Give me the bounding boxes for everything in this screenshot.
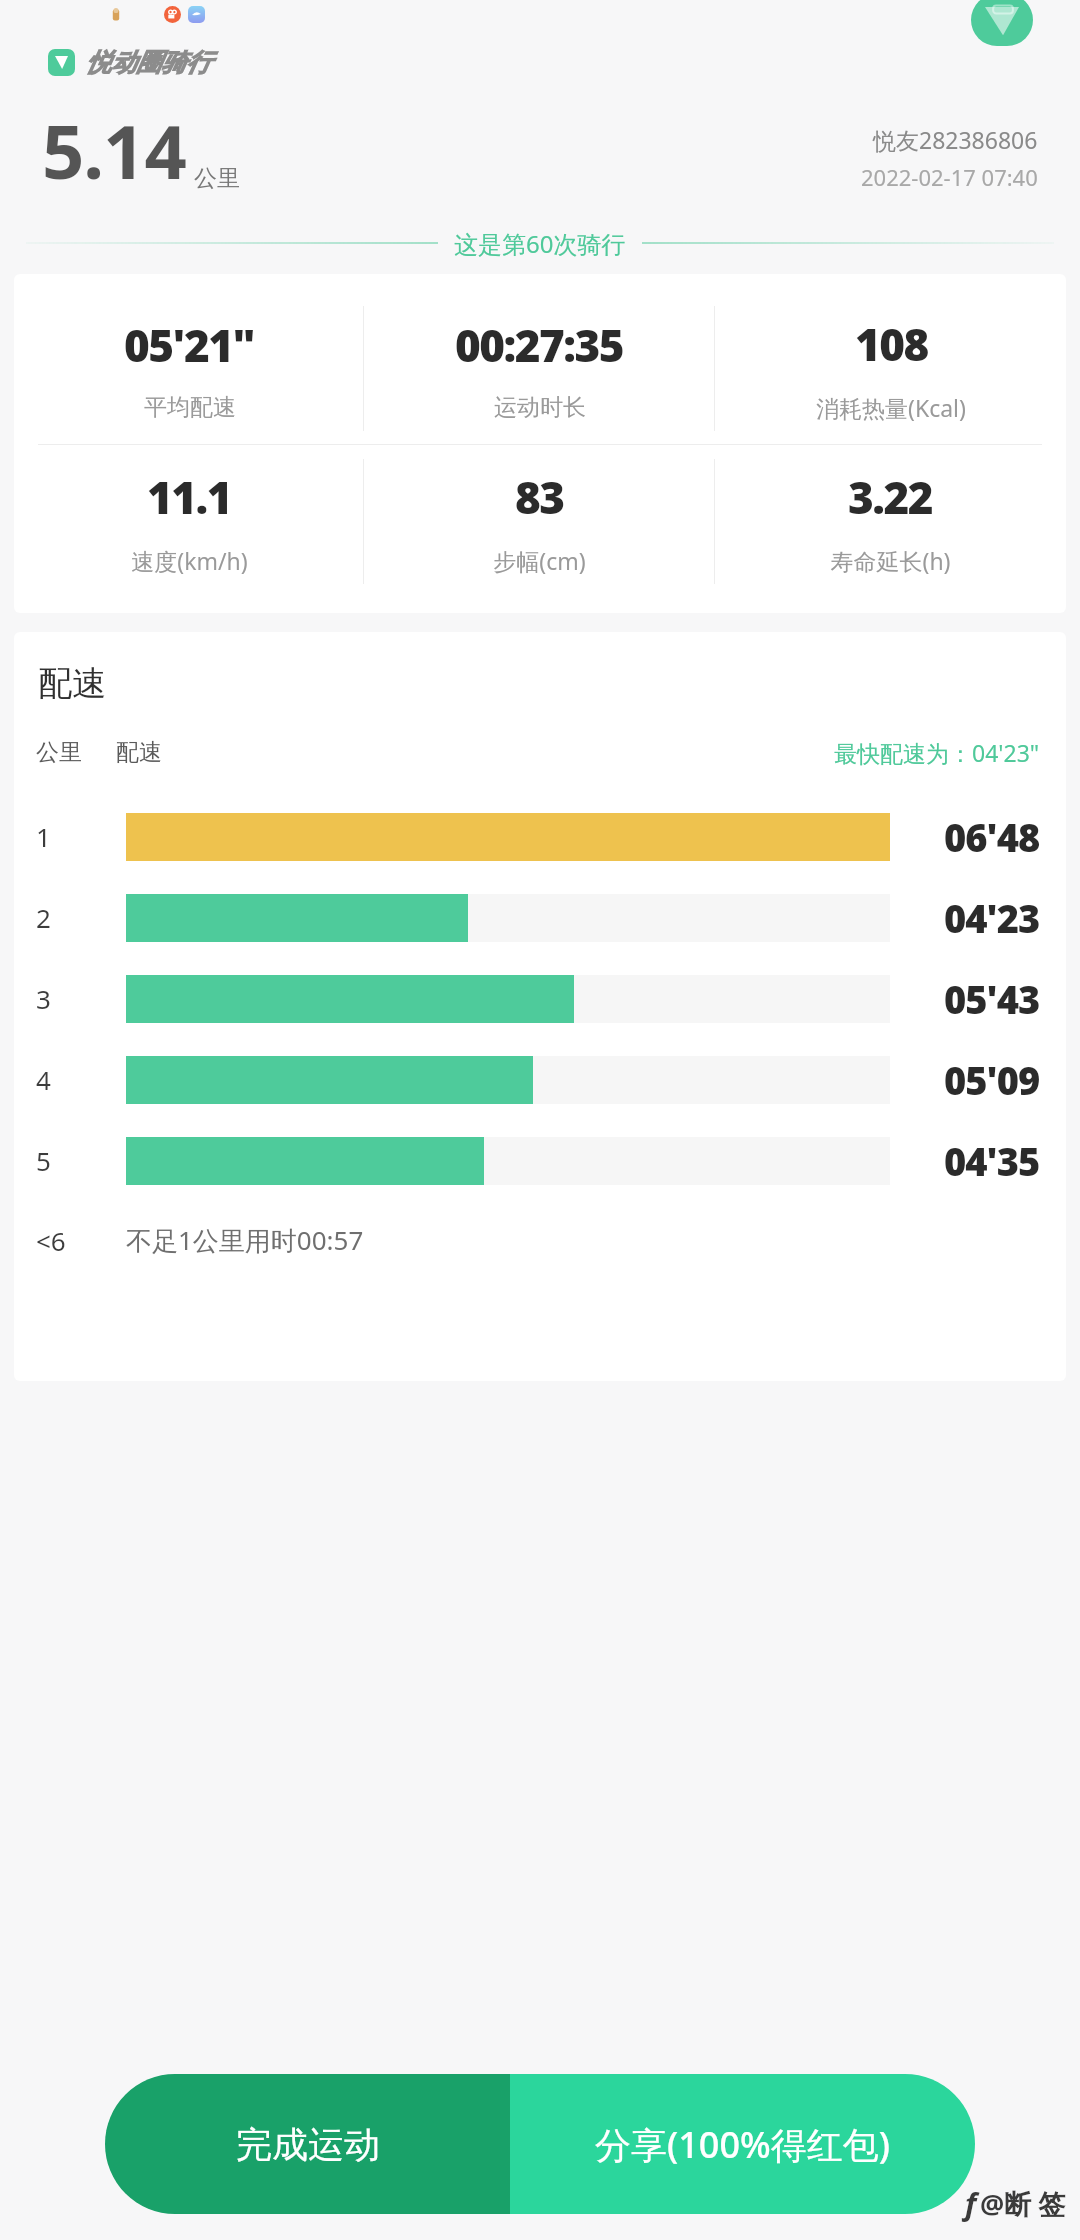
staticText: 05'43 xyxy=(944,973,1040,1025)
staticText: <6 xyxy=(36,1223,66,1258)
staticText: 5.14 xyxy=(42,100,186,200)
staticText: 1 xyxy=(36,819,51,854)
staticText: @断 签 xyxy=(980,2185,1066,2222)
staticText: 配速 xyxy=(116,738,162,767)
staticText: 00:27:35 xyxy=(455,315,624,375)
staticText: 步幅(cm) xyxy=(493,545,586,576)
staticText: 06'48 xyxy=(944,811,1040,863)
staticText: 运动时长 xyxy=(494,393,586,422)
staticText: 108 xyxy=(855,314,928,374)
staticText: 速度(km/h) xyxy=(131,545,248,576)
staticText: 2 xyxy=(36,900,51,935)
staticText: 悦动圈骑行 xyxy=(86,47,211,78)
staticText: 3 xyxy=(36,981,51,1016)
staticText: 最快配速为：04'23" xyxy=(834,737,1040,768)
staticText: 5 xyxy=(36,1143,51,1178)
staticText: 寿命延长(h) xyxy=(830,545,951,576)
staticText: 消耗热量(Kcal) xyxy=(816,392,966,423)
staticText: 04'35 xyxy=(944,1135,1040,1187)
staticText: 完成运动 xyxy=(236,2122,380,2167)
staticText: 04'23 xyxy=(944,892,1040,944)
staticText: 05'09 xyxy=(944,1054,1040,1106)
button[interactable]: Profile avatar xyxy=(971,0,1033,46)
staticText: 11.1 xyxy=(147,467,232,527)
staticText: f xyxy=(965,2183,977,2224)
staticText: 分享(100%得红包) xyxy=(595,2120,890,2169)
button[interactable]: 完成运动 xyxy=(105,2074,510,2214)
staticText: 83 xyxy=(515,467,564,527)
staticText: 平均配速 xyxy=(144,393,236,422)
staticText: 2022-02-17 07:40 xyxy=(861,162,1038,192)
staticText: 4 xyxy=(36,1062,51,1097)
staticText: 不足1公里用时00:57 xyxy=(126,1222,364,1258)
staticText: 05'21" xyxy=(124,315,255,375)
button[interactable]: 分享(100%得红包) xyxy=(510,2074,975,2214)
staticText: 3.22 xyxy=(848,467,933,527)
staticText: 公里 xyxy=(194,164,240,193)
staticText: 悦友282386806 xyxy=(873,124,1038,155)
staticText: 配速 xyxy=(38,662,106,705)
staticText: 公里 xyxy=(36,738,82,767)
staticText: 这是第60次骑行 xyxy=(454,227,626,260)
